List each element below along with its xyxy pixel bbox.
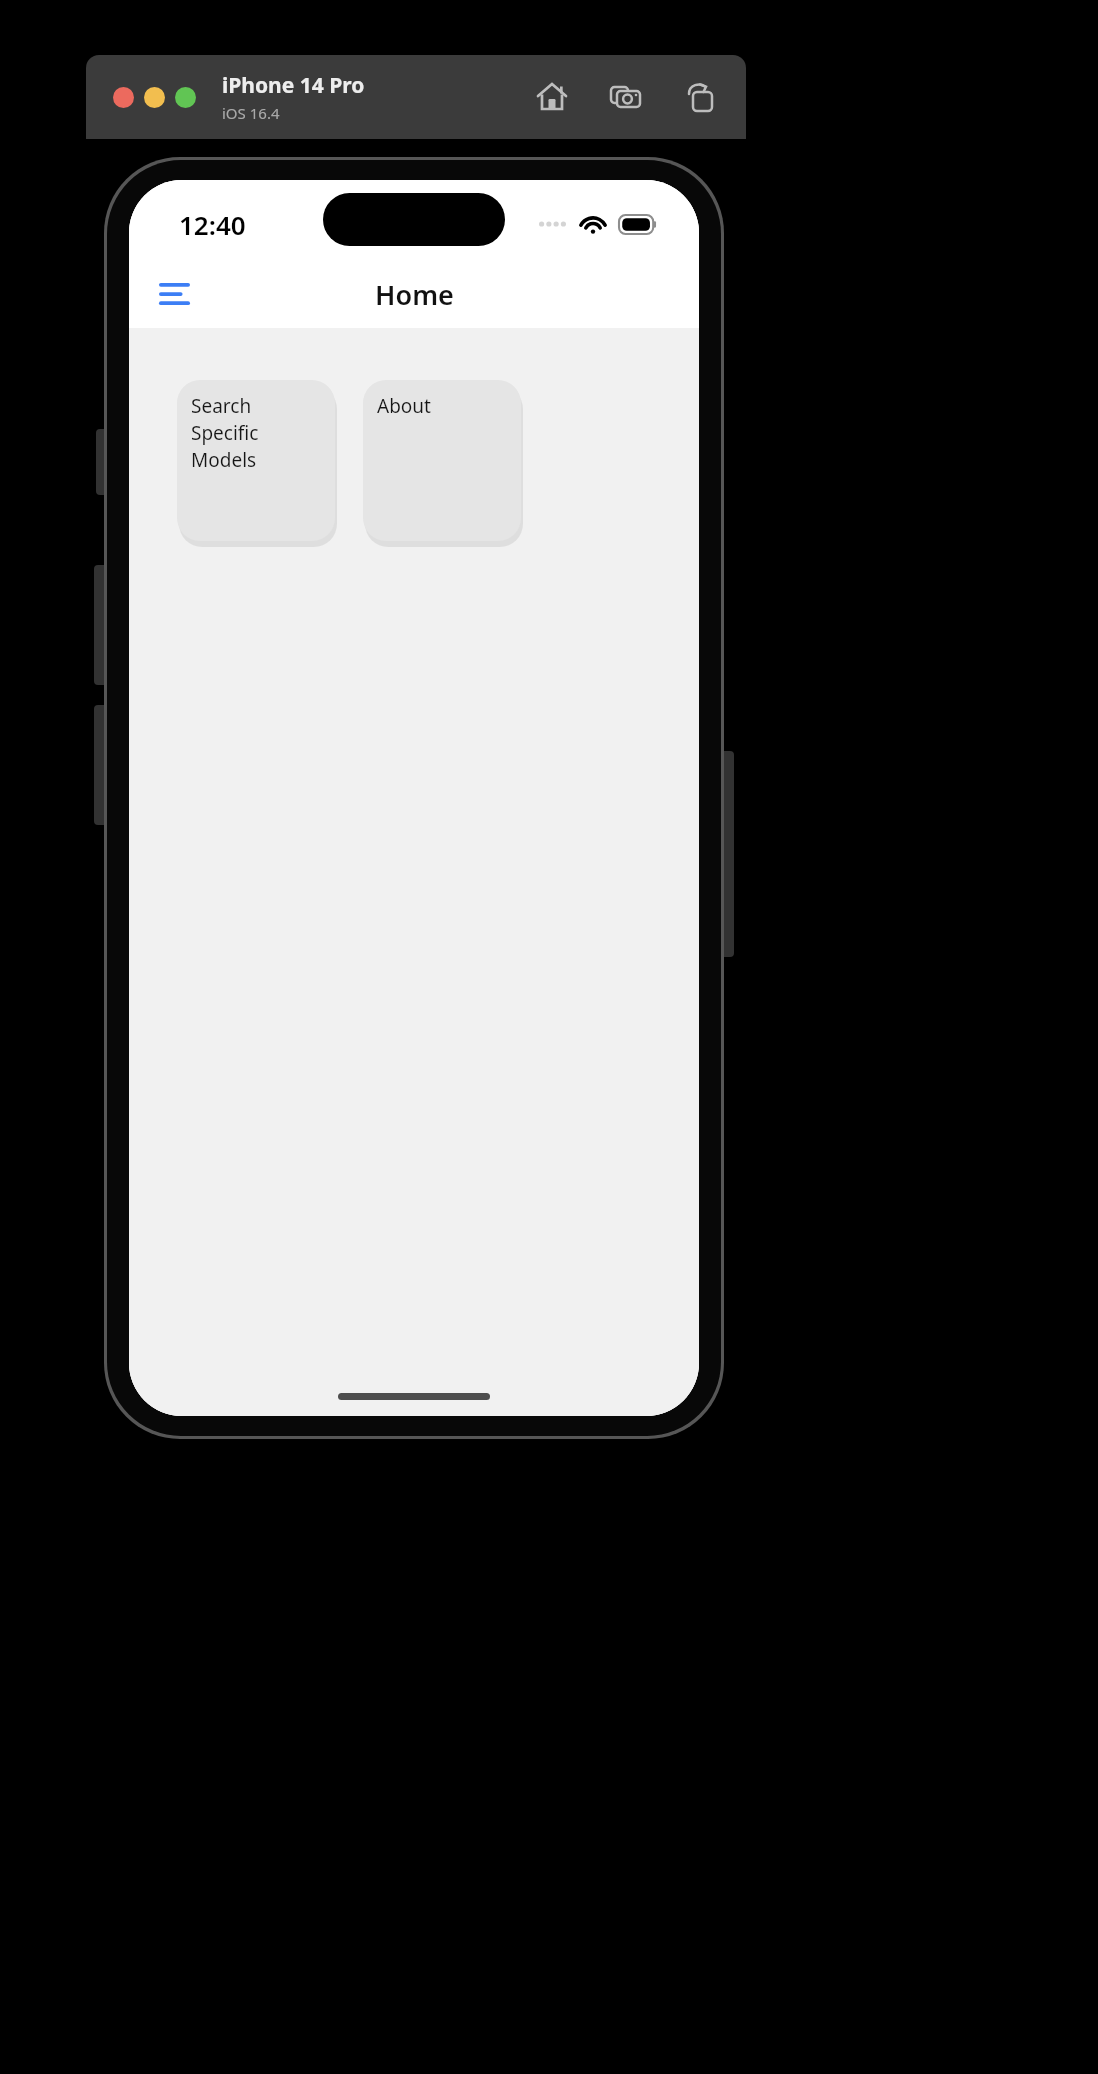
button[interactable]: Rotate [676,73,724,121]
button[interactable]: Screenshot [602,73,650,121]
button[interactable]: About [363,380,521,541]
staticText: Home [375,276,454,313]
staticText: iPhone 14 Pro [222,71,365,100]
staticText: 12:40 [179,207,246,242]
button[interactable]: Minimize [144,87,165,108]
staticText: About [377,393,431,419]
button[interactable]: Zoom [175,87,196,108]
button[interactable]: Close [113,87,134,108]
button[interactable]: Home [528,73,576,121]
staticText: Search Specific Models [191,393,323,473]
button[interactable]: Menu [149,269,199,319]
button[interactable]: Search Specific Models [177,380,335,541]
staticText: iOS 16.4 [222,103,280,123]
